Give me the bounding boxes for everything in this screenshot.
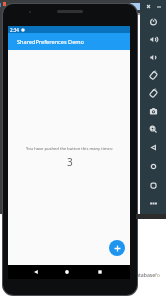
button[interactable]: Close	[144, 2, 153, 11]
button[interactable]: Zoom	[147, 123, 160, 136]
button[interactable]: Add	[109, 240, 125, 256]
staticText: 2:34	[10, 27, 19, 33]
button[interactable]: Home	[61, 266, 73, 278]
button[interactable]: Recents	[94, 266, 106, 278]
button[interactable]: Back	[147, 141, 160, 154]
button[interactable]: Rotate right	[147, 87, 160, 100]
button[interactable]: Minimize	[154, 2, 163, 11]
button[interactable]: Back	[30, 266, 42, 278]
button[interactable]: More	[147, 197, 160, 210]
button[interactable]: Rotate left	[147, 69, 160, 82]
staticText: SharedPreferences Demo	[17, 38, 84, 46]
button[interactable]: Volume down	[147, 51, 160, 64]
button[interactable]: Volume up	[147, 33, 160, 46]
button[interactable]: Overview	[147, 179, 160, 192]
button[interactable]: Power	[147, 15, 160, 28]
button[interactable]: Screenshot	[147, 105, 160, 118]
staticText: atabase	[136, 271, 156, 278]
staticText: 3	[67, 155, 73, 169]
staticText: You have pushed the button this many tim…	[26, 146, 113, 152]
button[interactable]: Home	[147, 160, 160, 173]
staticText: fo	[155, 271, 160, 278]
